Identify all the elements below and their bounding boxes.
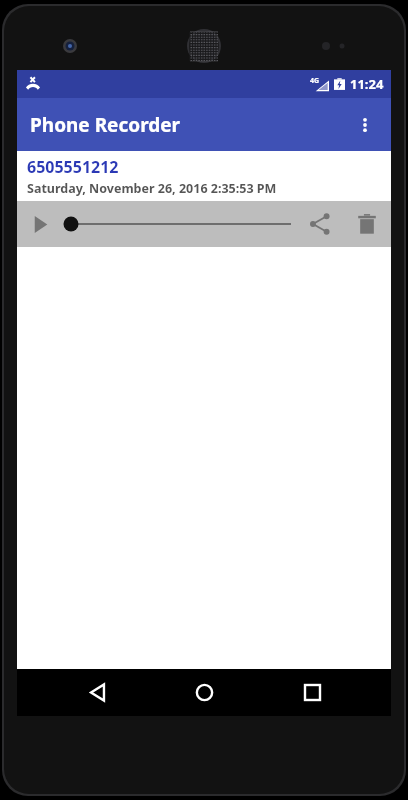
staticText: Saturday, November 26, 2016 2:35:53 PM (27, 180, 277, 197)
button[interactable]: Share (297, 201, 343, 247)
staticText: 6505551212 (27, 156, 119, 178)
button[interactable]: Recent apps (284, 669, 340, 716)
button[interactable]: Seek (63, 201, 291, 247)
staticText: Phone Recorder (30, 112, 181, 138)
button[interactable]: 6505551212 (17, 151, 391, 201)
button[interactable]: Play (17, 201, 63, 247)
button[interactable]: Delete (343, 201, 391, 247)
button[interactable]: More options (343, 103, 387, 147)
staticText: 4G (310, 76, 320, 86)
button[interactable]: Back (69, 669, 125, 716)
staticText: 11:24 (350, 75, 384, 93)
button[interactable]: Home (176, 669, 232, 716)
